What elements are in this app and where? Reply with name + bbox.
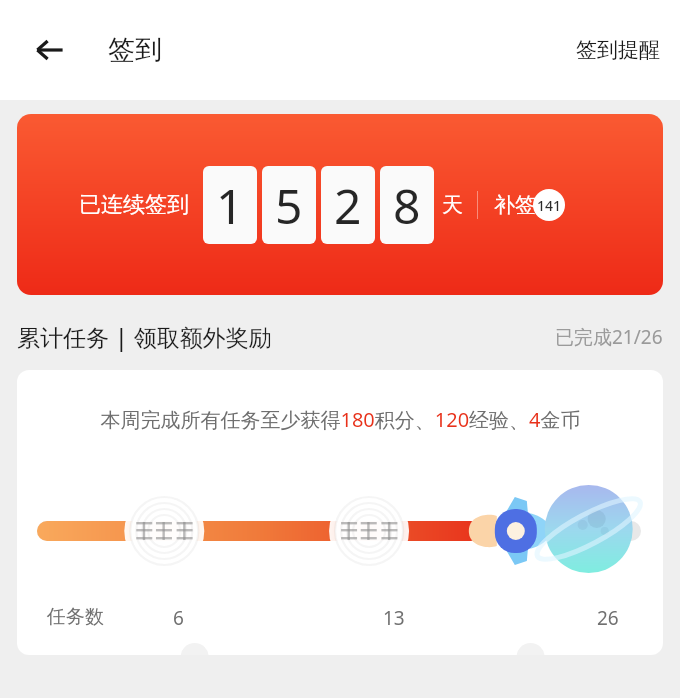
- staticText: 累计任务 | 领取额外奖励: [17, 321, 272, 352]
- staticText: 补签: [494, 192, 536, 218]
- staticText: 1: [216, 173, 244, 238]
- button[interactable]: 已连续签到: [17, 114, 663, 295]
- staticText: 141: [537, 196, 562, 215]
- button[interactable]: 签到提醒: [556, 25, 680, 75]
- staticText: 26: [597, 605, 619, 631]
- staticText: 5: [275, 173, 303, 238]
- button[interactable]: 补签: [494, 189, 568, 221]
- staticText: 天: [442, 192, 463, 218]
- staticText: 本周完成所有任务至少获得180积分、120经验、4金币: [100, 406, 581, 433]
- button[interactable]: Back: [26, 26, 74, 74]
- staticText: 2: [334, 173, 362, 238]
- staticText: 8: [393, 173, 421, 238]
- staticText: 签到提醒: [576, 37, 660, 63]
- staticText: 任务数: [47, 605, 104, 629]
- staticText: 13: [383, 605, 405, 631]
- staticText: 已完成21/26: [555, 324, 663, 350]
- staticText: 签到: [108, 33, 162, 67]
- button[interactable]: 本周完成所有任务至少获得180积分、120经验、4金币: [17, 370, 663, 655]
- staticText: 已连续签到: [79, 191, 189, 219]
- staticText: 6: [173, 605, 184, 631]
